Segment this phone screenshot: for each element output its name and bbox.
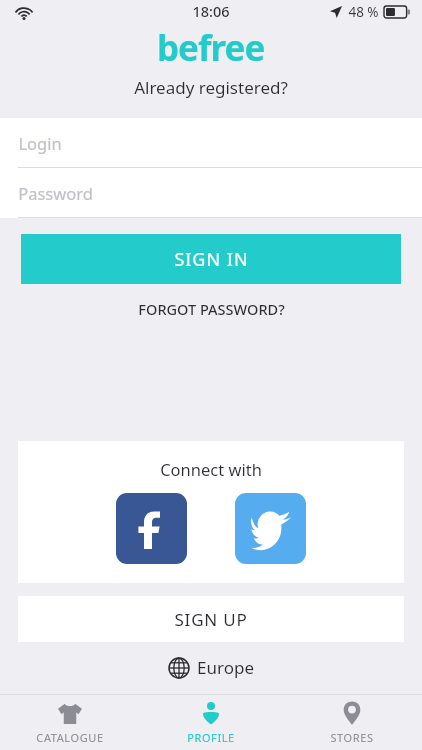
button[interactable]: SIGN UP: [18, 596, 404, 642]
staticText: Login: [18, 132, 62, 154]
staticText: CATALOGUE: [36, 730, 104, 745]
staticText: Europe: [197, 656, 254, 679]
button[interactable]: Europe: [158, 653, 264, 682]
button[interactable]: SIGN IN: [21, 234, 401, 284]
button[interactable]: CATALOGUE: [0, 695, 140, 750]
staticText: 48 %: [348, 3, 379, 21]
staticText: FORGOT PASSWORD?: [138, 299, 285, 319]
staticText: PROFILE: [187, 730, 235, 745]
button[interactable]: FORGOT PASSWORD?: [0, 296, 422, 322]
staticText: SIGN UP: [174, 608, 248, 631]
staticText: 18:06: [192, 1, 230, 21]
staticText: befree: [157, 24, 265, 68]
button[interactable]: STORES: [281, 695, 422, 750]
staticText: Already registered?: [134, 76, 288, 99]
button[interactable]: Login: [0, 118, 422, 167]
button[interactable]: Sign in with Facebook: [116, 493, 187, 564]
staticText: Password: [18, 182, 93, 204]
button[interactable]: Password: [0, 168, 422, 217]
button[interactable]: Sign in with Twitter: [235, 493, 306, 564]
staticText: Connect with: [160, 458, 262, 480]
button[interactable]: PROFILE: [140, 695, 281, 750]
staticText: SIGN IN: [174, 247, 249, 272]
staticText: STORES: [330, 730, 374, 745]
